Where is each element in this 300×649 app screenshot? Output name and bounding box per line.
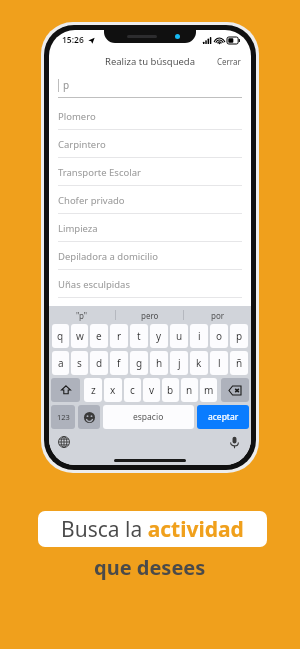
button[interactable]: w (71, 324, 88, 348)
staticText: pero (141, 310, 159, 321)
staticText: y (156, 329, 162, 343)
button[interactable]: Plomero (49, 102, 251, 130)
button[interactable]: t (130, 324, 148, 348)
button[interactable]: espacio (103, 405, 194, 429)
button[interactable]: Limpieza (49, 214, 251, 242)
staticText: q (57, 329, 64, 343)
staticText: ñ (236, 356, 243, 370)
staticText: Realiza tu búsqueda (105, 55, 196, 68)
button[interactable]: n (181, 378, 198, 402)
staticText: espacio (133, 411, 164, 423)
button[interactable]: "p" (49, 306, 115, 324)
staticText: "p" (76, 310, 88, 321)
button[interactable]: h (150, 351, 168, 375)
button[interactable]: aceptar (197, 405, 249, 429)
button[interactable]: l (210, 351, 228, 375)
button[interactable]: k (190, 351, 208, 375)
staticText: Uñas esculpidas (58, 278, 130, 291)
staticText: Cerrar (217, 56, 241, 67)
staticText: t (137, 329, 141, 343)
button[interactable]: Dictate (225, 433, 243, 451)
staticText: r (117, 329, 122, 343)
staticText: w (76, 329, 84, 343)
staticText: Limpieza (58, 222, 98, 235)
button[interactable]: d (90, 351, 108, 375)
button[interactable]: c (124, 378, 141, 402)
staticText: u (176, 329, 183, 343)
button[interactable]: x (104, 378, 122, 402)
staticText: k (196, 356, 202, 370)
button[interactable]: g (130, 351, 148, 375)
staticText: o (216, 329, 223, 343)
staticText: i (198, 329, 201, 343)
staticText: b (167, 383, 174, 397)
button[interactable]: Shift (51, 378, 80, 402)
button[interactable]: por (184, 306, 251, 324)
staticText: m (204, 383, 214, 397)
button[interactable]: u (170, 324, 188, 348)
staticText: Transporte Escolar (58, 166, 141, 179)
button[interactable]: Transporte Escolar (49, 158, 251, 186)
button[interactable]: p (58, 72, 242, 98)
staticText: c (130, 383, 135, 397)
button[interactable]: s (71, 351, 88, 375)
button[interactable]: j (170, 351, 188, 375)
button[interactable]: Change language (55, 433, 73, 451)
staticText: l (218, 356, 221, 370)
staticText: v (149, 383, 155, 397)
button[interactable]: i (190, 324, 208, 348)
staticText: Plomero (58, 110, 96, 123)
staticText: p (63, 78, 70, 92)
button[interactable]: 123 (51, 405, 75, 429)
staticText: n (186, 383, 193, 397)
staticText: j (178, 356, 181, 370)
staticText: d (96, 356, 103, 370)
button[interactable]: y (150, 324, 168, 348)
button[interactable]: p (230, 324, 248, 348)
staticText: que desees (94, 554, 206, 581)
staticText: Busca la actividad (61, 515, 244, 544)
button[interactable]: a (52, 351, 69, 375)
button[interactable]: m (200, 378, 217, 402)
staticText: Carpintero (58, 138, 106, 151)
button[interactable]: z (84, 378, 102, 402)
button[interactable]: Chofer privado (49, 186, 251, 214)
button[interactable]: b (162, 378, 179, 402)
staticText: x (110, 383, 116, 397)
staticText: f (117, 356, 121, 370)
button[interactable]: e (90, 324, 108, 348)
button[interactable]: Uñas esculpidas (49, 270, 251, 298)
button[interactable]: f (110, 351, 128, 375)
staticText: por (211, 310, 225, 321)
staticText: 123 (57, 412, 70, 422)
button[interactable]: q (52, 324, 69, 348)
button[interactable]: Delete (221, 378, 249, 402)
staticText: g (136, 356, 143, 370)
button[interactable]: o (210, 324, 228, 348)
staticText: Depiladora a domicilio (58, 250, 158, 263)
staticText: Chofer privado (58, 194, 125, 207)
button[interactable]: r (110, 324, 128, 348)
staticText: z (91, 383, 96, 397)
button[interactable]: v (143, 378, 160, 402)
button[interactable]: Carpintero (49, 130, 251, 158)
button[interactable]: Cerrar (207, 52, 251, 71)
staticText: 15:26 (62, 34, 84, 46)
staticText: e (96, 329, 102, 343)
staticText: h (156, 356, 163, 370)
staticText: aceptar (208, 411, 239, 423)
staticText: s (77, 356, 82, 370)
staticText: p (236, 329, 243, 343)
button[interactable]: Depiladora a domicilio (49, 242, 251, 270)
button[interactable]: ñ (230, 351, 248, 375)
button[interactable]: pero (116, 306, 183, 324)
button[interactable]: Emoji (78, 405, 100, 429)
staticText: a (58, 356, 64, 370)
